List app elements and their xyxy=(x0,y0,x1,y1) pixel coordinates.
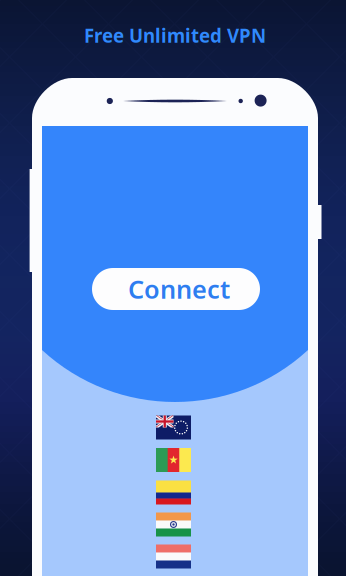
button[interactable]: Cook Islands server xyxy=(0,0,346,576)
button[interactable]: Netherlands server xyxy=(0,0,346,576)
staticText: Free Unlimited VPN xyxy=(84,23,266,48)
button[interactable]: Colombia server xyxy=(0,0,346,576)
button[interactable]: Cameroon server xyxy=(0,0,346,576)
staticText: Connect xyxy=(128,272,230,306)
button[interactable]: Connect xyxy=(92,268,260,310)
button[interactable]: India server xyxy=(0,0,346,576)
